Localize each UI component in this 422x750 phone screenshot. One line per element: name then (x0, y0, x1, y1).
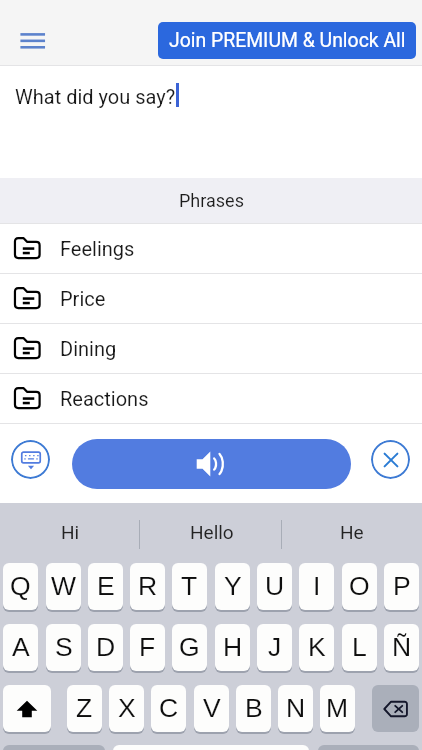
staticText: X (118, 693, 136, 723)
button[interactable]: Return (318, 745, 419, 750)
staticText: Ñ (392, 632, 412, 662)
staticText: D (96, 632, 116, 662)
staticText: He (340, 521, 364, 543)
staticText: F (139, 632, 156, 662)
button[interactable]: W (46, 563, 81, 610)
button[interactable]: F (130, 624, 165, 671)
button[interactable]: V (194, 685, 229, 732)
staticText: T (181, 571, 198, 601)
button[interactable]: Speak (72, 439, 351, 489)
staticText: I (313, 571, 321, 601)
button[interactable]: D (88, 624, 123, 671)
button[interactable]: Hi (0, 503, 141, 560)
staticText: H (223, 632, 243, 662)
button[interactable]: Shift (3, 685, 51, 732)
button[interactable]: Close (371, 440, 410, 479)
button[interactable]: Join PREMIUM & Unlock All (158, 22, 416, 59)
staticText: J (268, 632, 282, 662)
staticText: Join PREMIUM & Unlock All (169, 29, 406, 52)
staticText: Z (76, 693, 93, 723)
button[interactable]: Backspace (372, 685, 419, 732)
staticText: Phrases (179, 190, 244, 211)
staticText: Dining (60, 337, 117, 360)
staticText: V (203, 693, 221, 723)
staticText: M (326, 693, 349, 723)
button[interactable]: Price (0, 274, 422, 323)
button[interactable]: U (257, 563, 292, 610)
button[interactable]: Hello (141, 503, 282, 560)
staticText: K (308, 632, 326, 662)
staticText: G (179, 632, 200, 662)
button[interactable]: He (282, 503, 422, 560)
staticText: R (138, 571, 158, 601)
staticText: What did you say? (15, 85, 176, 108)
button[interactable]: Dining (0, 324, 422, 373)
staticText: Reactions (60, 387, 149, 410)
staticText: U (265, 571, 285, 601)
staticText: Y (224, 571, 242, 601)
staticText: S (55, 632, 73, 662)
staticText: L (352, 632, 367, 662)
staticText: O (349, 571, 370, 601)
button[interactable]: A (3, 624, 38, 671)
staticText: B (245, 693, 263, 723)
button[interactable]: T (172, 563, 207, 610)
button[interactable]: B (236, 685, 271, 732)
button[interactable]: E (88, 563, 123, 610)
button[interactable]: M (320, 685, 355, 732)
staticText: A (12, 632, 30, 662)
button[interactable]: G (172, 624, 207, 671)
button[interactable]: C (151, 685, 186, 732)
staticText: Price (60, 287, 106, 310)
button[interactable]: L (342, 624, 377, 671)
staticText: Hi (61, 521, 80, 543)
staticText: Q (10, 571, 31, 601)
button[interactable]: Ñ (384, 624, 419, 671)
staticText: Feelings (60, 237, 135, 260)
button[interactable]: O (342, 563, 377, 610)
button[interactable]: Q (3, 563, 38, 610)
staticText: P (393, 571, 411, 601)
button[interactable]: H (215, 624, 250, 671)
button[interactable]: N (278, 685, 313, 732)
button[interactable]: Y (215, 563, 250, 610)
button[interactable]: K (299, 624, 334, 671)
button[interactable]: Reactions (0, 374, 422, 423)
button[interactable]: J (257, 624, 292, 671)
button[interactable]: I (299, 563, 334, 610)
staticText: E (97, 571, 115, 601)
staticText: N (286, 693, 306, 723)
staticText: Hello (190, 521, 234, 543)
button[interactable]: Feelings (0, 224, 422, 273)
button[interactable]: Space (113, 745, 309, 750)
button[interactable]: P (384, 563, 419, 610)
staticText: W (51, 571, 77, 601)
button[interactable]: Numbers (3, 745, 105, 750)
button[interactable]: R (130, 563, 165, 610)
button[interactable]: Menu (13, 20, 53, 60)
button[interactable]: X (109, 685, 144, 732)
button[interactable]: Z (67, 685, 102, 732)
button[interactable]: Hide keyboard (11, 440, 50, 479)
button[interactable]: S (46, 624, 81, 671)
staticText: C (159, 693, 179, 723)
